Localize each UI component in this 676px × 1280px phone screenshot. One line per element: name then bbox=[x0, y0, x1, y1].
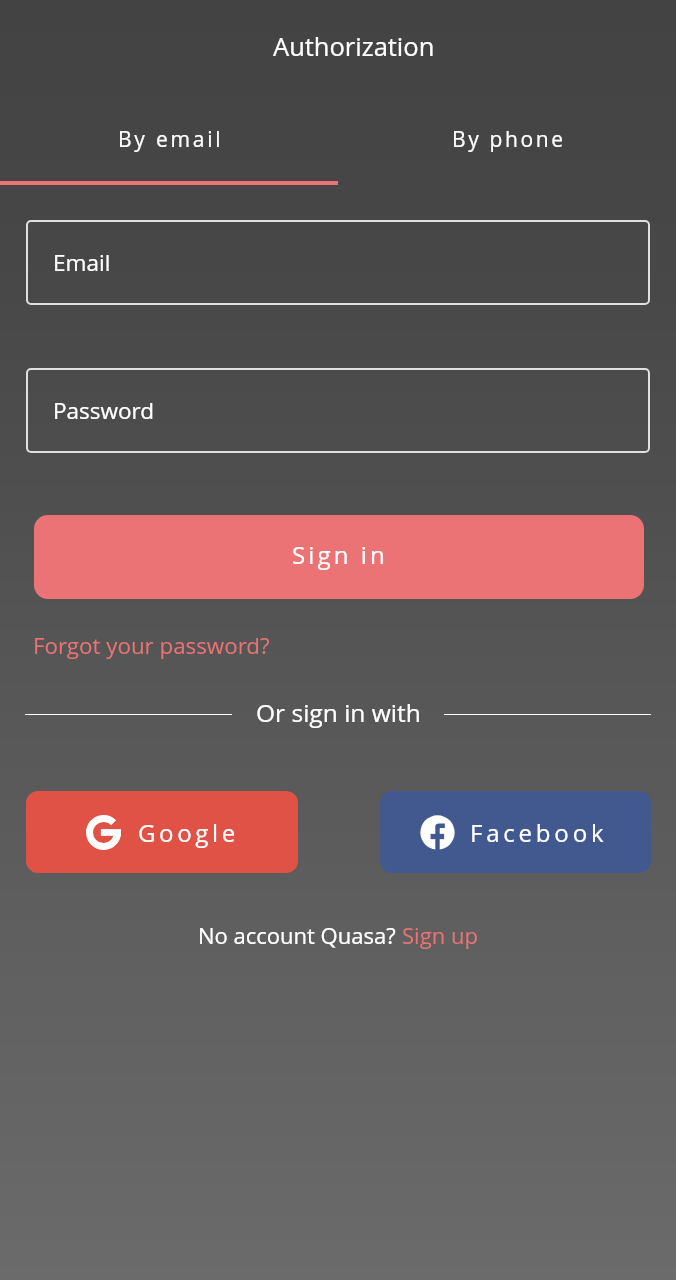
staticText: Sign up bbox=[402, 920, 478, 950]
button[interactable]: By email bbox=[0, 110, 338, 170]
staticText: Authorization bbox=[273, 29, 435, 64]
staticText: Or sign in with bbox=[256, 696, 421, 729]
button[interactable]: Sign in with Facebook bbox=[380, 791, 651, 873]
staticText: Google bbox=[138, 816, 239, 849]
button[interactable]: Sign in bbox=[34, 515, 644, 599]
staticText: Facebook bbox=[470, 816, 608, 849]
staticText: Password bbox=[53, 395, 155, 426]
button[interactable]: Email bbox=[26, 220, 650, 305]
staticText: Sign in bbox=[292, 538, 388, 571]
button[interactable]: Forgot your password? bbox=[33, 630, 270, 660]
staticText: By phone bbox=[452, 125, 566, 154]
staticText: Email bbox=[53, 247, 111, 278]
staticText: Forgot your password? bbox=[33, 630, 270, 660]
button[interactable]: Sign up bbox=[402, 920, 478, 950]
staticText: No account Quasa? bbox=[198, 920, 402, 950]
button[interactable]: Sign in with Google bbox=[26, 791, 298, 873]
button[interactable]: By phone bbox=[338, 110, 676, 170]
other: Sign in with Facebook bbox=[420, 815, 455, 850]
other: Sign in with Google bbox=[86, 815, 121, 850]
staticText: By email bbox=[118, 125, 224, 154]
button[interactable]: Password bbox=[26, 368, 650, 453]
